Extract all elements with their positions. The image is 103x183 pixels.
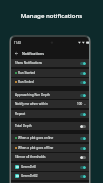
staticText: Notifications [22, 51, 44, 56]
staticText: ft [84, 103, 86, 106]
button[interactable]: When a plot goes offline [11, 144, 89, 152]
staticText: Run Started [18, 71, 36, 75]
staticText: Silence all thresholds [15, 155, 46, 159]
button[interactable]: Notify me when within [11, 100, 89, 108]
button[interactable]: Run Ended [11, 78, 89, 86]
staticText: Approaching Run Depth [15, 93, 50, 97]
staticText: When a plot goes online [18, 136, 54, 140]
staticText: GreenDrill [21, 165, 36, 169]
button[interactable]: Repeat [11, 110, 89, 118]
staticText: Show Notifications [15, 61, 43, 65]
staticText: 100 [77, 102, 83, 106]
button[interactable]: Silence all thresholds [11, 153, 89, 161]
button[interactable]: Show Notifications [11, 59, 89, 67]
button[interactable]: GreenDrill2 [11, 172, 89, 180]
staticText: Manage notifications [0, 11, 103, 19]
staticText: Total Depth [15, 124, 32, 128]
button[interactable]: Back [13, 50, 20, 57]
staticText: Notify me when within [15, 102, 48, 106]
button[interactable]: Run Started [11, 69, 89, 77]
staticText: GreenDrill2 [21, 174, 38, 178]
staticText: When a plot goes offline [18, 146, 54, 150]
staticText: 11:33 [14, 41, 21, 44]
staticText: Run Ended [18, 80, 34, 84]
staticText: Repeat [15, 112, 26, 116]
button[interactable]: Approaching Run Depth [11, 91, 89, 99]
button[interactable]: GreenDrill [11, 163, 89, 171]
button[interactable]: Total Depth [11, 122, 89, 130]
button[interactable]: When a plot goes online [11, 134, 89, 142]
